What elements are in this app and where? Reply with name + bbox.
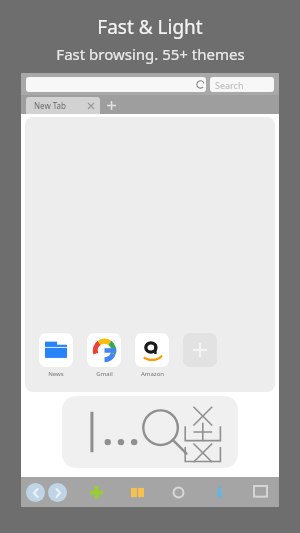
button[interactable]: Fullscreen [248,480,272,504]
staticText: Search [215,79,244,91]
button[interactable]: Close tab [84,99,98,113]
button[interactable]: New Tab [26,97,100,114]
staticText: News [48,370,64,378]
button[interactable]: Tabs [166,480,190,504]
button[interactable]: Search [210,77,274,92]
button[interactable]: Add [84,480,108,504]
button[interactable]: Amazon [135,333,169,378]
button[interactable]: Reload [26,77,206,92]
button[interactable] [62,396,238,468]
button[interactable]: Bookmarks [125,480,149,504]
button[interactable]: New tab [100,97,122,114]
staticText: Fast & Light [97,14,203,40]
staticText: Amazon [141,370,164,378]
button[interactable]: Add shortcut [183,333,217,367]
button[interactable]: Downloads [207,480,231,504]
staticText: New Tab [34,100,84,111]
staticText: Gmail [96,370,113,378]
other: Reload [195,79,206,90]
staticText: Fast browsing. 55+ themes [56,44,245,64]
button[interactable]: Forward [48,483,67,502]
button[interactable]: Back [26,483,45,502]
button[interactable]: Gmail [87,333,121,378]
button[interactable]: News [39,333,73,378]
